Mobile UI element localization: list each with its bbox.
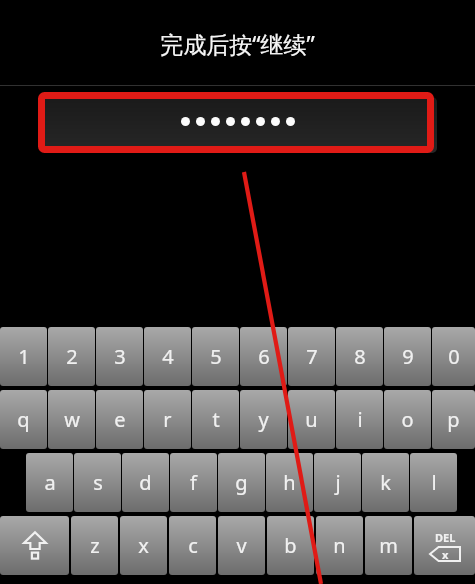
staticText: 3 (114, 343, 126, 370)
button[interactable]: b (267, 516, 314, 575)
staticText: 5 (210, 343, 222, 370)
staticText: s (93, 469, 103, 496)
button[interactable]: 2 (48, 327, 95, 386)
button[interactable]: 4 (144, 327, 191, 386)
staticText: 6 (258, 343, 270, 370)
button[interactable]: 6 (240, 327, 287, 386)
button[interactable]: Delete (414, 516, 475, 575)
button[interactable]: Shift (0, 516, 69, 575)
button[interactable]: h (266, 453, 313, 512)
staticText: 完成后按“继续” (160, 28, 315, 59)
button[interactable]: m (365, 516, 412, 575)
button[interactable] (44, 97, 437, 153)
staticText: j (335, 469, 341, 496)
button[interactable]: 3 (96, 327, 143, 386)
staticText: h (283, 469, 296, 496)
button[interactable]: t (192, 390, 239, 449)
button[interactable]: z (71, 516, 118, 575)
staticText: q (17, 406, 30, 433)
staticText: 1 (18, 343, 30, 370)
staticText: z (90, 532, 100, 559)
button[interactable]: 8 (336, 327, 383, 386)
button[interactable]: s (74, 453, 121, 512)
button[interactable]: o (384, 390, 431, 449)
staticText: 7 (306, 343, 318, 370)
button[interactable]: u (288, 390, 335, 449)
button[interactable]: j (314, 453, 361, 512)
button[interactable]: 5 (192, 327, 239, 386)
staticText: u (305, 406, 318, 433)
staticText: p (447, 406, 460, 433)
staticText: l (431, 469, 437, 496)
button[interactable]: i (336, 390, 383, 449)
button[interactable]: e (96, 390, 143, 449)
button[interactable]: f (170, 453, 217, 512)
button[interactable]: 1 (0, 327, 47, 386)
button[interactable]: p (432, 390, 475, 449)
button[interactable]: 0 (432, 327, 475, 386)
staticText: y (258, 406, 269, 433)
button[interactable]: x (120, 516, 167, 575)
staticText: 8 (354, 343, 366, 370)
staticText: x (442, 547, 449, 562)
staticText: v (236, 532, 247, 559)
button[interactable]: a (26, 453, 73, 512)
staticText: t (212, 406, 220, 433)
button[interactable]: n (316, 516, 363, 575)
staticText: b (284, 532, 297, 559)
staticText: x (138, 532, 149, 559)
button[interactable]: y (240, 390, 287, 449)
button[interactable]: g (218, 453, 265, 512)
button[interactable]: 7 (288, 327, 335, 386)
button[interactable]: 9 (384, 327, 431, 386)
staticText: 0 (448, 343, 460, 370)
staticText: a (44, 469, 56, 496)
staticText: d (139, 469, 152, 496)
staticText: w (64, 406, 80, 433)
staticText: 4 (162, 343, 174, 370)
staticText: 2 (66, 343, 78, 370)
button[interactable]: c (169, 516, 216, 575)
button[interactable]: k (362, 453, 409, 512)
staticText: DEL (435, 530, 456, 545)
staticText: e (114, 406, 126, 433)
staticText: n (333, 532, 346, 559)
staticText: m (379, 532, 398, 559)
button[interactable]: w (48, 390, 95, 449)
staticText: 9 (402, 343, 414, 370)
button[interactable]: l (410, 453, 457, 512)
staticText: i (357, 406, 363, 433)
button[interactable]: d (122, 453, 169, 512)
button[interactable]: v (218, 516, 265, 575)
staticText: g (235, 469, 248, 496)
staticText: c (188, 532, 198, 559)
staticText: o (401, 406, 414, 433)
staticText: k (380, 469, 391, 496)
button[interactable]: q (0, 390, 47, 449)
staticText: r (163, 406, 172, 433)
staticText: f (190, 469, 197, 496)
button[interactable]: r (144, 390, 191, 449)
